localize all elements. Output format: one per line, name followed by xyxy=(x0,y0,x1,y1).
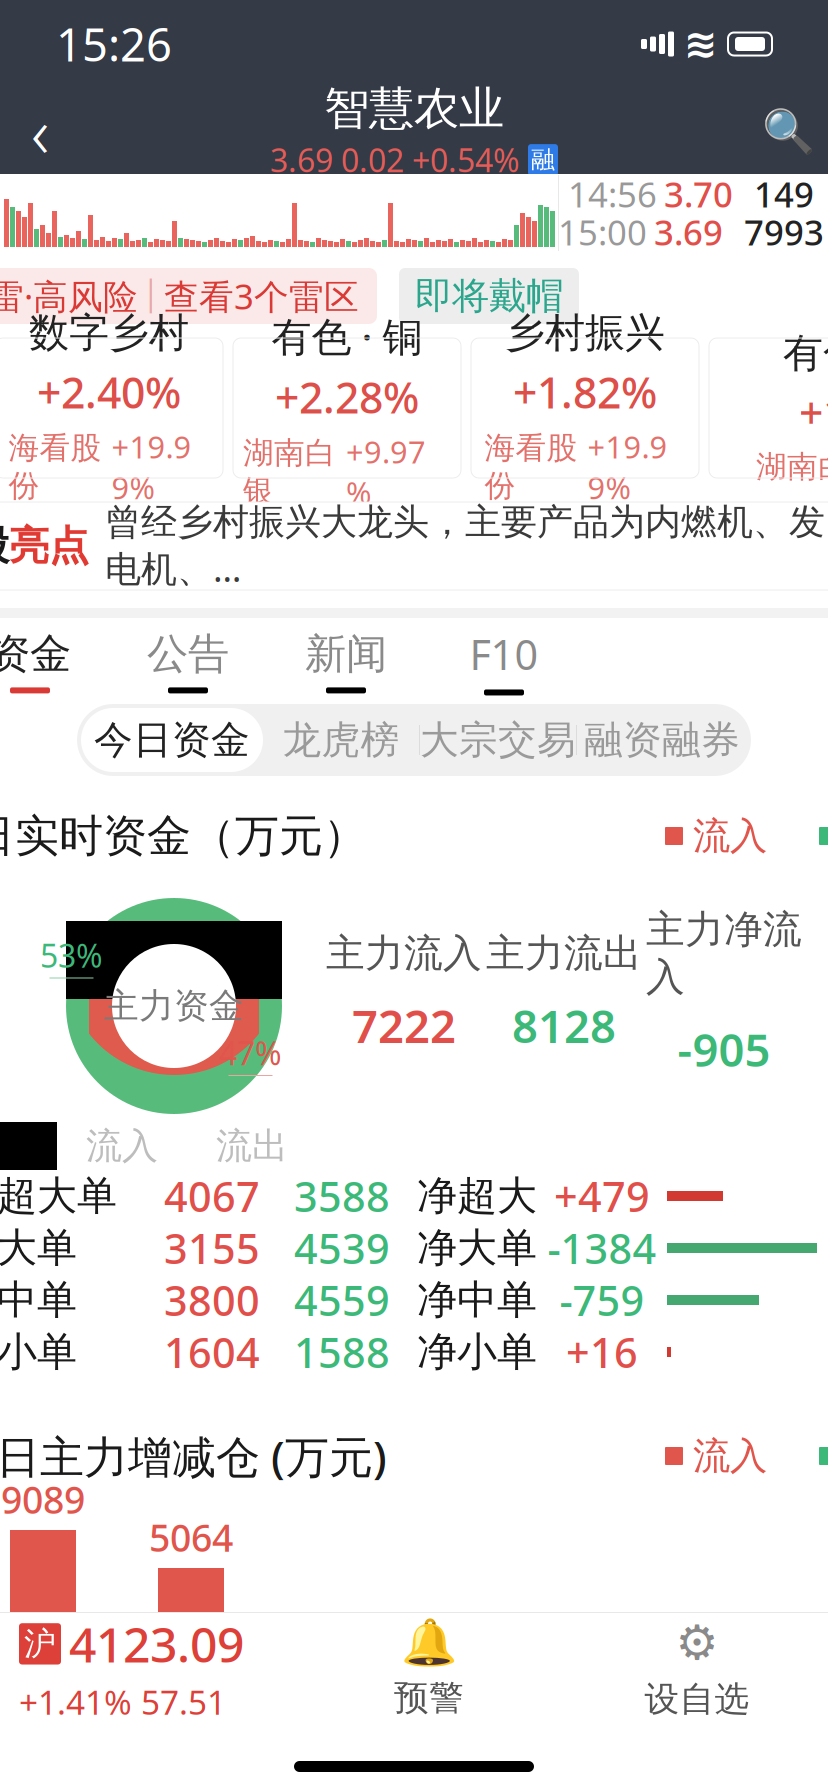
button[interactable]: 沪 xyxy=(0,1612,295,1724)
staticText: 流出 xyxy=(216,1124,288,1168)
staticText: 7993 xyxy=(744,209,824,255)
staticText: 今日资金 xyxy=(94,716,250,764)
staticText: 3.69 0.02 +0.54% xyxy=(270,139,520,181)
staticText: 曾经乡村振兴大龙头，主要产品为内燃机、发电机、… xyxy=(105,500,825,592)
staticText: 海看股份 xyxy=(484,429,577,504)
staticText: 净超大 xyxy=(417,1171,537,1220)
staticText: 5064 xyxy=(149,1512,233,1562)
staticText: 即将戴帽 xyxy=(415,273,563,319)
staticText: 净小单 xyxy=(417,1327,537,1376)
staticText: 主力流出 xyxy=(486,930,642,977)
staticText: +19.99% xyxy=(111,426,191,508)
staticText: 3800 xyxy=(164,1273,260,1327)
button[interactable]: 有色 xyxy=(709,338,828,478)
button[interactable]: 今日资金 xyxy=(81,708,263,772)
staticText: 龙虎榜 xyxy=(282,716,399,764)
staticText: -1384 xyxy=(547,1221,656,1275)
staticText: ‹ xyxy=(31,85,49,177)
staticText: 4067 xyxy=(164,1169,260,1223)
staticText: 沪 xyxy=(24,1624,56,1663)
staticText: 3.69 xyxy=(654,209,723,255)
button[interactable]: 即将戴帽 xyxy=(399,268,579,324)
staticText: 今日实时资金（万元） xyxy=(0,809,367,863)
staticText: 预警 xyxy=(394,1677,464,1719)
staticText: 7222 xyxy=(352,995,456,1055)
staticText: 3588 xyxy=(294,1169,390,1223)
staticText: 中单 xyxy=(0,1275,77,1324)
button[interactable]: Back xyxy=(0,88,80,174)
staticText: 🔍 xyxy=(761,107,814,155)
staticText: 流入 xyxy=(693,1433,767,1479)
staticText: +479 xyxy=(554,1169,650,1223)
staticText: 设自选 xyxy=(644,1678,749,1720)
staticText: +1.82% xyxy=(513,363,657,420)
staticText: 主力流入 xyxy=(326,930,482,977)
button[interactable]: 🔔 xyxy=(295,1612,563,1724)
staticText: 近5日主力增减仓 (万元) xyxy=(0,1427,387,1485)
staticText: 主力净流入 xyxy=(646,906,802,1001)
staticText: 1604 xyxy=(164,1325,260,1379)
button[interactable]: 龙虎榜 xyxy=(263,708,419,772)
staticText: 海看股份 xyxy=(8,429,101,504)
button[interactable]: 融资融券 xyxy=(577,708,747,772)
staticText: 大宗交易 xyxy=(420,716,576,764)
staticText: 湖南白银 xyxy=(243,434,336,510)
staticText: 湖南白银 xyxy=(756,448,828,486)
staticText: 新闻 xyxy=(305,629,387,679)
staticText: 融 xyxy=(531,145,555,175)
staticText: 数字乡村 xyxy=(29,308,189,357)
staticText: │ xyxy=(142,279,160,313)
staticText: 🔔 xyxy=(401,1617,457,1669)
staticText: 4539 xyxy=(294,1221,390,1275)
button[interactable]: 有色 · 铜 xyxy=(233,338,461,478)
staticText: 1588 xyxy=(294,1325,390,1379)
button[interactable]: 公告 xyxy=(109,618,267,704)
staticText: 主力资金 xyxy=(104,985,244,1027)
staticText: 3155 xyxy=(164,1221,260,1275)
button[interactable]: ⚙ xyxy=(563,1612,828,1724)
staticText: 4123.09 xyxy=(69,1612,244,1676)
staticText: 个股 xyxy=(0,521,9,570)
staticText: -759 xyxy=(559,1273,644,1327)
staticText: 149 xyxy=(754,171,814,217)
staticText: 3.70 xyxy=(664,171,733,217)
staticText: 流入 xyxy=(693,813,767,859)
button[interactable]: 数字乡村 xyxy=(0,338,223,478)
staticText: 流入 xyxy=(86,1124,158,1168)
staticText: +2.28% xyxy=(275,369,419,425)
staticText: 智慧农业 xyxy=(324,81,504,137)
staticText: 47% xyxy=(219,1031,282,1074)
staticText: 净大单 xyxy=(417,1223,537,1272)
button[interactable]: F10 xyxy=(425,618,583,704)
staticText: 净中单 xyxy=(417,1275,537,1324)
staticText: 15:26 xyxy=(56,14,172,74)
staticText: +1.41% 57.51 xyxy=(19,1680,226,1724)
staticText: 8128 xyxy=(512,995,616,1055)
staticText: 小单 xyxy=(0,1327,77,1376)
staticText: +19.99% xyxy=(587,426,667,508)
staticText: 有色 xyxy=(783,329,828,378)
staticText: 4559 xyxy=(294,1273,390,1327)
staticText: 15:00 xyxy=(558,209,647,255)
staticText: +9.97% xyxy=(346,431,426,513)
button[interactable]: 资金 xyxy=(0,618,109,704)
staticText: 9089 xyxy=(1,1474,85,1524)
staticText: +1 xyxy=(799,384,828,441)
staticText: 融资融券 xyxy=(584,716,740,764)
staticText: 53% xyxy=(40,934,103,976)
staticText: 有色 · 铜 xyxy=(271,309,422,362)
button[interactable]: 乡村振兴 xyxy=(471,338,699,478)
staticText: +16 xyxy=(566,1325,638,1379)
staticText: 查看3个雷区 xyxy=(164,273,359,319)
button[interactable]: 新闻 xyxy=(267,618,425,704)
button[interactable]: Search xyxy=(748,88,828,174)
button[interactable]: 大宗交易 xyxy=(420,708,576,772)
staticText: +2.40% xyxy=(37,363,181,420)
staticText: 扫雷·高风险 xyxy=(0,273,138,319)
button[interactable]: ✸ xyxy=(0,268,377,324)
button[interactable]: 个股 xyxy=(0,502,828,590)
staticText: ⚙ xyxy=(675,1615,718,1670)
staticText: 亮点 xyxy=(9,521,89,570)
staticText: 资金 xyxy=(0,629,71,679)
staticText: 14:56 xyxy=(568,171,657,217)
